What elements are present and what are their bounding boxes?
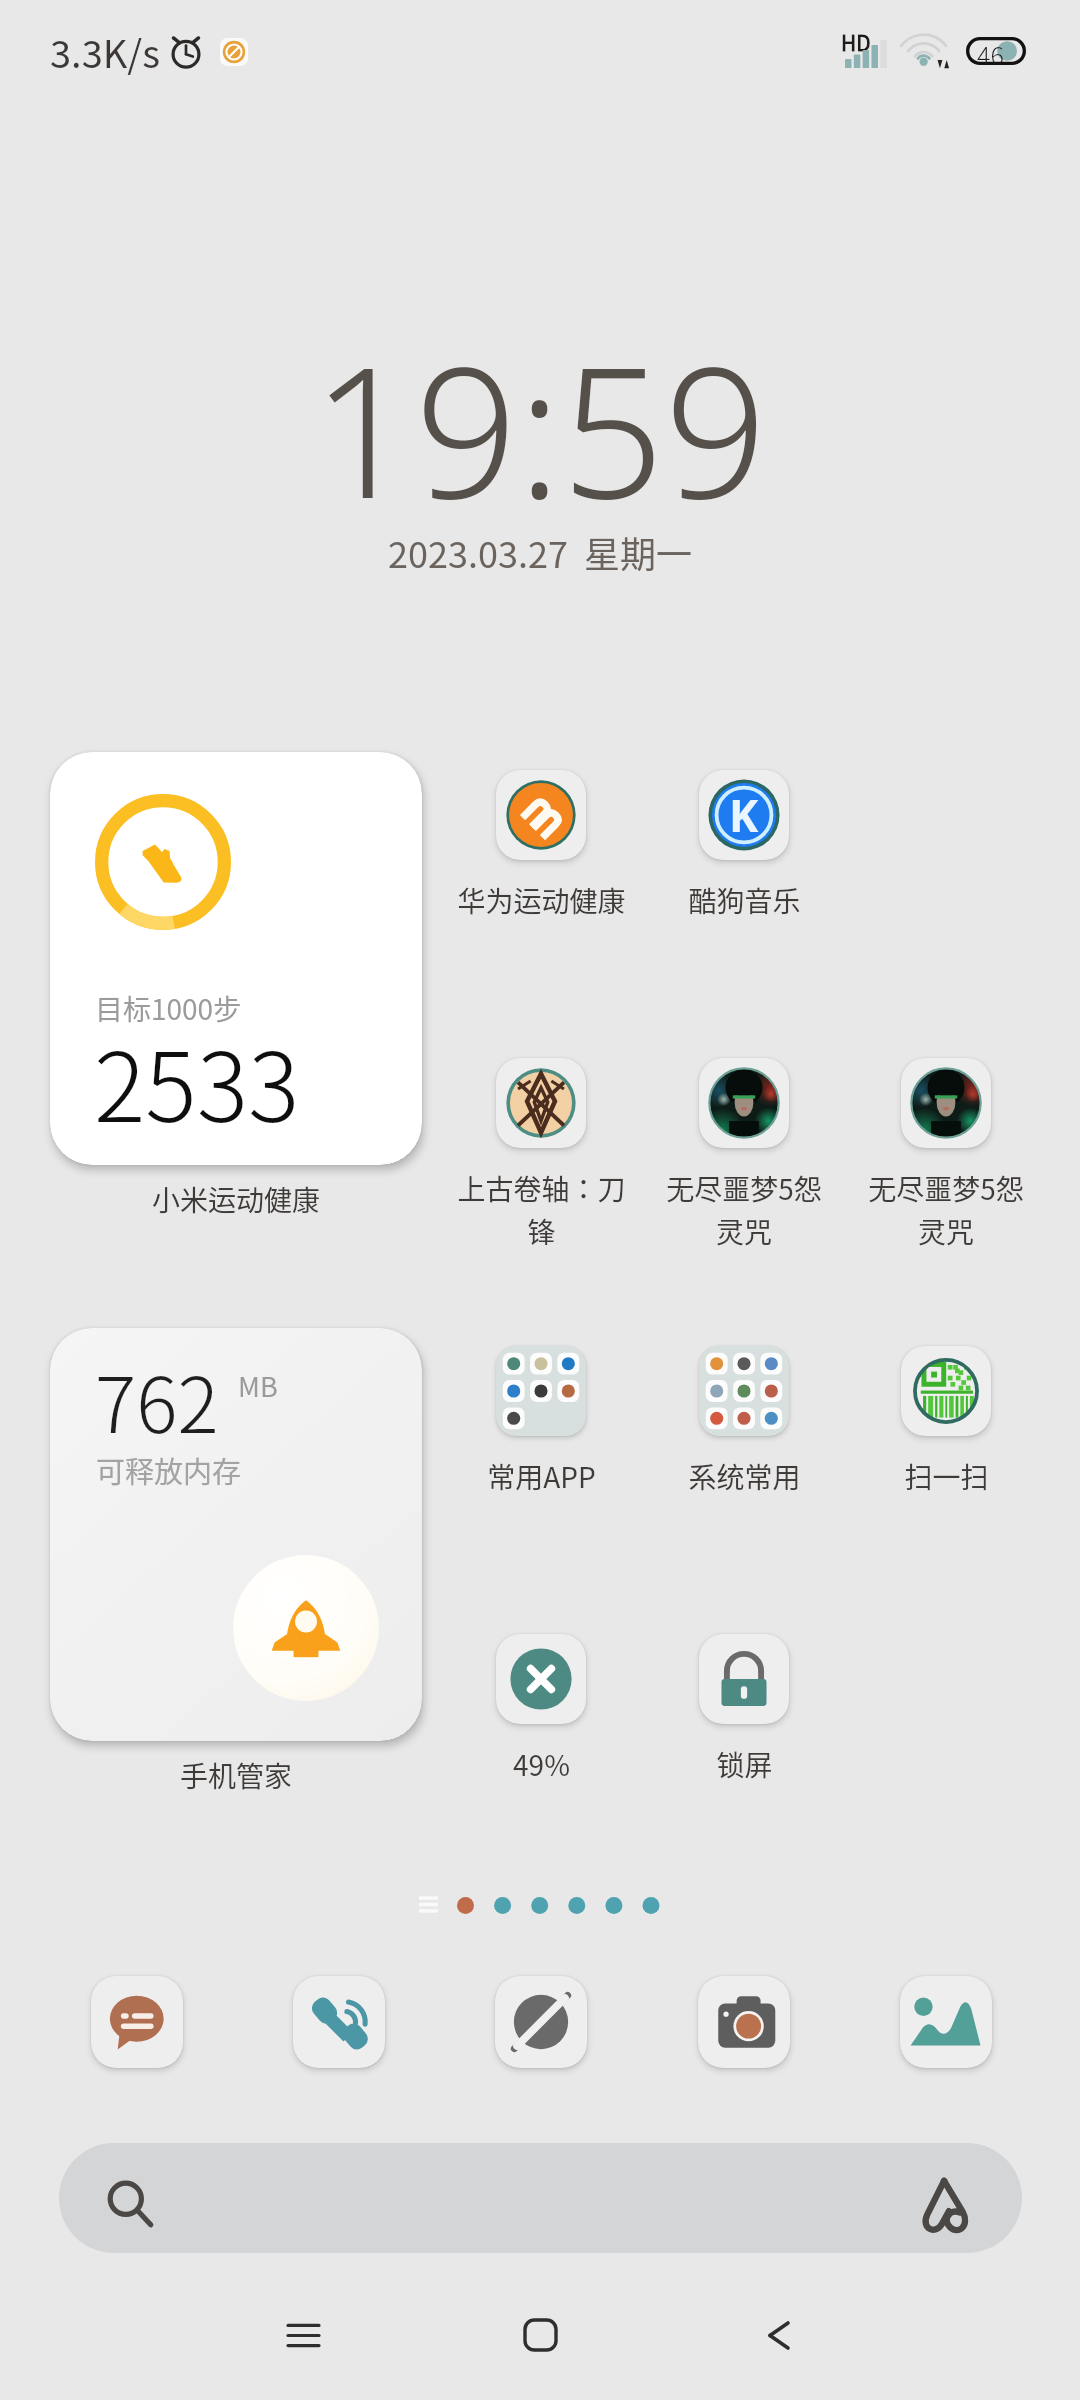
staticText: 华为运动健康 [457, 880, 626, 921]
button[interactable]: 无尽噩梦5怨 灵咒 [643, 1058, 845, 1252]
staticText: 无尽噩梦5怨 灵咒 [868, 1168, 1024, 1252]
button[interactable]: Camera [698, 1976, 790, 2068]
button[interactable]: 19:59 [0, 306, 1080, 603]
staticText: HD [841, 27, 871, 57]
button[interactable]: Browser [495, 1976, 587, 2068]
button[interactable]: Home [460, 2255, 620, 2400]
button[interactable]: Messages [91, 1976, 183, 2068]
button[interactable]: 常用APP [440, 1346, 642, 1497]
button[interactable]: 762 [50, 1328, 422, 1741]
staticText: 46 [977, 36, 1004, 64]
button[interactable]: 扫一扫 [845, 1346, 1047, 1497]
staticText: 锁屏 [716, 1744, 773, 1785]
button[interactable]: 锁屏 [643, 1634, 845, 1785]
button[interactable]: Search [59, 2143, 1022, 2253]
button[interactable]: App list [419, 1896, 438, 1913]
button[interactable]: Recents [223, 2255, 383, 2400]
button[interactable]: Phone [293, 1976, 385, 2068]
button[interactable]: 无尽噩梦5怨 灵咒 [845, 1058, 1047, 1252]
button[interactable]: 华为运动健康 [440, 770, 642, 921]
button[interactable]: Back [698, 2255, 858, 2400]
staticText: 酷狗音乐 [688, 880, 801, 921]
button[interactable]: K [643, 770, 845, 921]
staticText: 小米运动健康 [152, 1179, 321, 1220]
staticText: 19:59 [312, 306, 768, 551]
staticText: 2023.03.27 星期一 [388, 526, 692, 578]
staticText: 常用APP [487, 1456, 596, 1497]
staticText: 可释放内存 [96, 1449, 242, 1491]
staticText: 49% [513, 1744, 570, 1785]
staticText: K [729, 785, 759, 845]
staticText: 手机管家 [180, 1755, 293, 1796]
staticText: MB [238, 1366, 278, 1405]
staticText: 2533 [94, 1011, 300, 1150]
button[interactable]: 系统常用 [643, 1346, 845, 1497]
staticText: 3.3K/s [50, 24, 160, 79]
button[interactable]: 目标1000步 [50, 752, 422, 1165]
staticText: 762 [95, 1344, 219, 1455]
staticText: 无尽噩梦5怨 灵咒 [666, 1168, 822, 1252]
staticText: 目标1000步 [95, 988, 242, 1029]
button[interactable]: 49% [440, 1634, 642, 1785]
button[interactable]: 上古卷轴：刀 锋 [440, 1058, 642, 1252]
button[interactable]: Gallery [900, 1976, 992, 2068]
staticText: 扫一扫 [904, 1456, 989, 1497]
staticText: 系统常用 [688, 1456, 801, 1497]
staticText: 上古卷轴：刀 锋 [457, 1168, 626, 1252]
